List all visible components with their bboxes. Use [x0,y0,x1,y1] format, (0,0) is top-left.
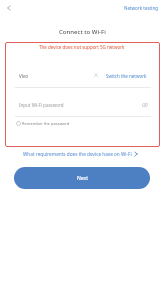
staticText: Input Wi-Fi password [19,102,64,108]
button[interactable]: Network testing [122,2,160,14]
button[interactable]: Show password [140,100,150,110]
button[interactable]: What requirements does the device have o… [18,151,142,157]
staticText: Remember the password [22,121,70,126]
staticText: Network testing [124,5,158,11]
staticText: The device does not support 5G network [39,44,125,50]
button[interactable]: Back [3,2,15,14]
staticText: Connect to Wi-Fi [59,28,106,36]
staticText: Vivo [19,73,28,79]
staticText: What requirements does the device have o… [23,151,132,157]
button[interactable]: Remember the password [16,121,70,126]
button[interactable]: Switch the network [104,71,149,81]
staticText: Next [77,175,88,182]
button[interactable]: Next [14,167,150,189]
button[interactable]: Clear [92,71,100,79]
staticText: Switch the network [106,73,147,79]
